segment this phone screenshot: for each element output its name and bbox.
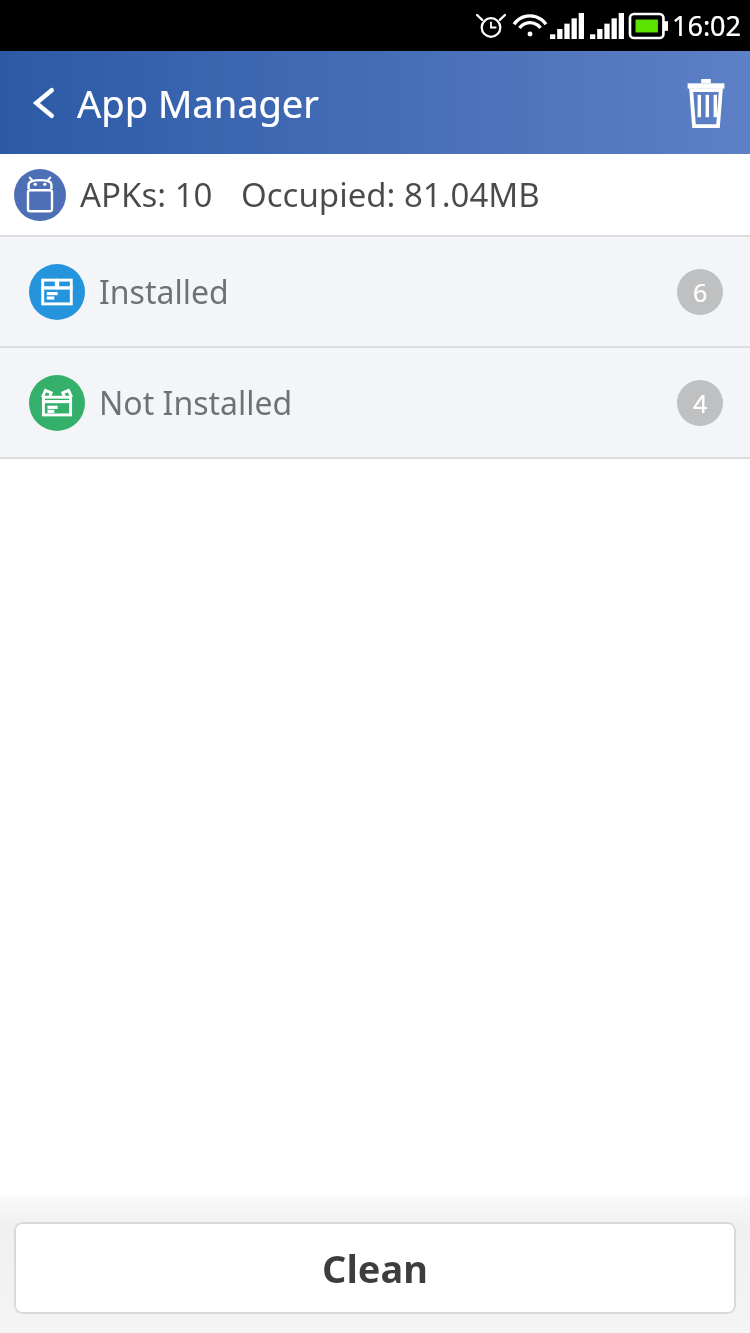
button[interactable]: Not Installed — [0, 348, 750, 457]
staticText: Installed — [99, 270, 229, 314]
staticText: APKs: 10 — [80, 172, 213, 217]
button[interactable]: Clean — [14, 1222, 736, 1314]
button[interactable]: Installed — [0, 237, 750, 346]
staticText: 6 — [693, 275, 708, 309]
button[interactable]: Delete — [662, 59, 750, 147]
other: Back — [32, 83, 56, 123]
staticText: Clean — [322, 1242, 428, 1294]
staticText: 4 — [693, 386, 708, 420]
staticText: Occupied: 81.04MB — [241, 172, 540, 217]
button[interactable]: Back — [0, 65, 337, 141]
staticText: 16:02 — [672, 7, 742, 44]
staticText: App Manager — [77, 77, 319, 129]
staticText: Not Installed — [99, 381, 293, 425]
